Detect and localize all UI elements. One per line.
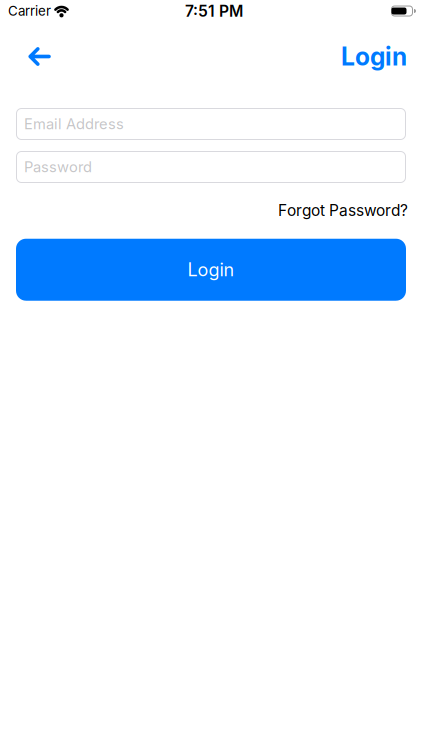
staticText: 7:51 PM bbox=[185, 2, 243, 20]
staticText: Password bbox=[24, 158, 92, 176]
button[interactable]: Back bbox=[0, 43, 51, 69]
staticText: Carrier bbox=[8, 3, 51, 19]
staticText: Forgot Password? bbox=[278, 201, 408, 220]
staticText: Login bbox=[341, 42, 407, 71]
staticText: Email Address bbox=[24, 115, 124, 133]
button[interactable]: Login bbox=[0, 239, 422, 301]
secureTextField[interactable]: Password bbox=[0, 151, 422, 183]
button[interactable]: Forgot Password? bbox=[278, 201, 408, 220]
textField[interactable]: Email Address bbox=[0, 108, 422, 140]
staticText: Login bbox=[187, 259, 234, 281]
